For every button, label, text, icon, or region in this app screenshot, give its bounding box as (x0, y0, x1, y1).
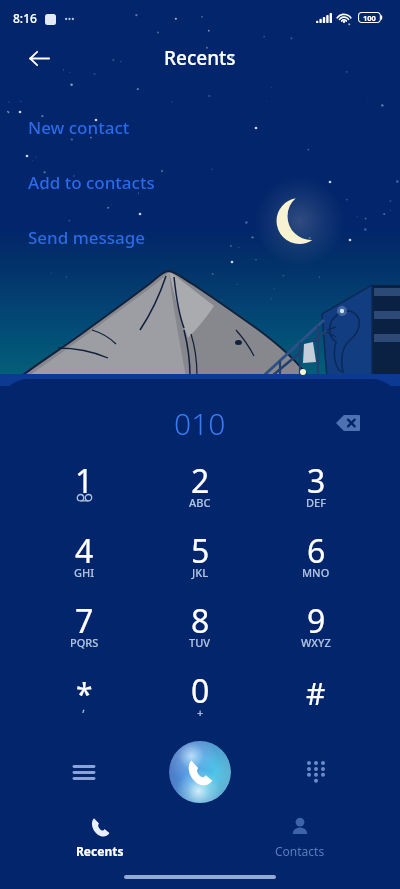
staticText: 010 (174, 403, 226, 444)
button[interactable]: 2 (142, 452, 258, 522)
staticText: WXYZ (301, 635, 331, 650)
staticText: GHI (74, 565, 95, 580)
staticText: 2 (191, 459, 210, 503)
staticText: PQRS (70, 635, 99, 650)
staticText: * (76, 673, 93, 714)
button[interactable]: Recents (0, 809, 200, 866)
staticText: New contact (28, 116, 130, 139)
staticText: ABC (189, 495, 211, 510)
staticText: Send message (28, 226, 146, 249)
staticText: + (197, 705, 204, 720)
staticText: 7 (75, 599, 94, 643)
staticText: 3 (307, 459, 326, 503)
staticText: 4 (75, 529, 94, 573)
button[interactable]: 5 (142, 522, 258, 592)
button[interactable]: Back (18, 37, 60, 79)
staticText: 5 (191, 529, 210, 573)
button[interactable]: Backspace (326, 401, 370, 445)
staticText: 9 (307, 599, 326, 643)
button[interactable]: 9 (258, 592, 374, 662)
button[interactable]: 3 (258, 452, 374, 522)
staticText: 0 (191, 669, 210, 713)
staticText: Recents (164, 45, 236, 71)
staticText: Contacts (275, 843, 325, 859)
staticText: MNO (302, 565, 330, 580)
button[interactable]: Call log menu (26, 737, 142, 807)
staticText: 1 (75, 459, 94, 503)
staticText: DEF (306, 495, 326, 510)
button[interactable]: 6 (258, 522, 374, 592)
button[interactable]: * (26, 662, 142, 732)
staticText: 100 (363, 13, 376, 23)
button[interactable]: 8 (142, 592, 258, 662)
staticText: 8:16 (13, 10, 37, 26)
button[interactable]: New contact (0, 100, 400, 155)
button[interactable]: Add to contacts (0, 155, 400, 210)
button[interactable]: # (258, 662, 374, 732)
button[interactable]: Send message (0, 210, 400, 265)
staticText: TUV (189, 635, 211, 650)
staticText: Add to contacts (28, 171, 155, 194)
button[interactable]: 7 (26, 592, 142, 662)
staticText: 8 (191, 599, 210, 643)
button[interactable]: 4 (26, 522, 142, 592)
button[interactable]: Call (169, 741, 231, 803)
button[interactable]: 1 (26, 452, 142, 522)
staticText: , (82, 698, 86, 714)
staticText: 6 (307, 529, 326, 573)
staticText: # (306, 673, 326, 714)
staticText: Recents (76, 843, 124, 859)
button[interactable]: 0 (142, 662, 258, 732)
staticText: JKL (192, 565, 209, 580)
button[interactable]: Dialpad (258, 737, 374, 807)
button[interactable]: Contacts (200, 809, 400, 866)
